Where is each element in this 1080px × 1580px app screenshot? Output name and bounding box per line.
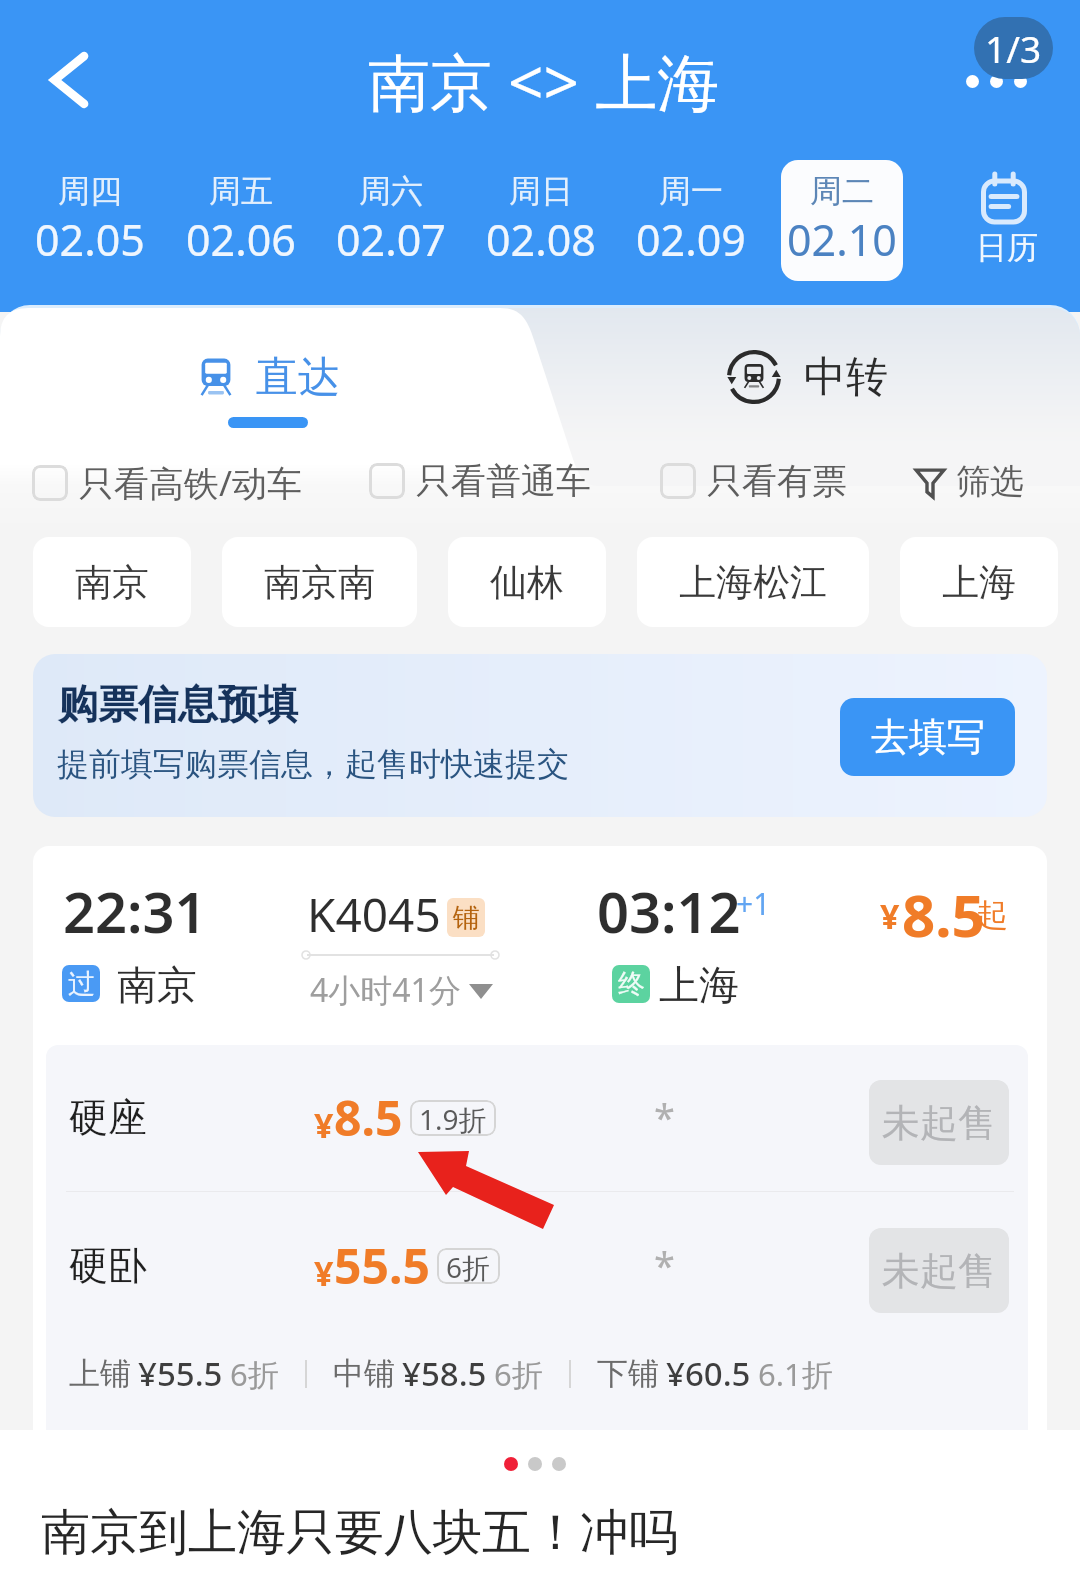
staticText: 02.06 (186, 210, 296, 269)
staticText: 上海松江 (679, 559, 827, 606)
button[interactable]: 上海 (900, 537, 1058, 627)
staticText: 购票信息预填 (58, 679, 298, 729)
button[interactable]: 只看有票 (660, 459, 847, 503)
staticText: 南京到上海只要八块五！冲吗 (41, 1502, 678, 1564)
staticText: 1/3 (985, 23, 1042, 73)
staticText: 日历 (976, 228, 1038, 267)
staticText: 南京 (75, 559, 149, 606)
staticText: ¥60.5 (666, 1351, 751, 1396)
button[interactable] (33, 846, 1047, 1042)
button[interactable]: 周六 (330, 160, 452, 281)
staticText: 只看有票 (707, 459, 847, 503)
staticText: 02.07 (336, 210, 446, 269)
button[interactable]: 周日 (480, 160, 602, 281)
button[interactable]: 周四 (29, 160, 151, 281)
button[interactable]: 南京 (33, 537, 191, 627)
button[interactable]: 周五 (180, 160, 302, 281)
staticText: 4小时41分 (310, 968, 461, 1012)
staticText: 1.9折 (419, 1100, 487, 1136)
button[interactable]: 只看高铁/动车 (32, 459, 303, 507)
staticText: 硬座 (69, 1093, 147, 1142)
button[interactable]: 南京南 (222, 537, 417, 627)
staticText: 未起售 (882, 1247, 996, 1295)
staticText: 中转 (804, 351, 888, 404)
staticText: 中铺 (333, 1354, 395, 1393)
staticText: 南京 <> 上海 (368, 39, 720, 124)
staticText: 上海 (659, 960, 739, 1010)
staticText: 02.08 (486, 210, 596, 269)
button[interactable]: 未起售 (869, 1228, 1009, 1313)
staticText: ¥55.5 (138, 1351, 223, 1396)
button[interactable]: 只看普通车 (369, 459, 591, 503)
staticText: ¥58.5 (402, 1351, 487, 1396)
button[interactable]: 去填写 (840, 698, 1015, 776)
staticText: 55.5 (334, 1233, 430, 1298)
staticText: 筛选 (956, 460, 1024, 503)
staticText: 铺 (453, 901, 480, 935)
staticText: 6折 (446, 1248, 491, 1284)
staticText: 6.1折 (758, 1353, 833, 1395)
button[interactable]: 上海松江 (637, 537, 869, 627)
button[interactable]: Calendar (955, 162, 1055, 274)
button[interactable]: 直达 (196, 344, 340, 410)
staticText: ¥ (314, 1102, 334, 1148)
staticText: 8.5 (902, 875, 985, 954)
staticText: 过 (68, 967, 95, 1001)
staticText: 直达 (256, 351, 340, 404)
button[interactable]: 未起售 (869, 1080, 1009, 1165)
staticText: 8.5 (334, 1085, 403, 1150)
staticText: 周一 (659, 171, 723, 211)
staticText: 只看普通车 (416, 459, 591, 503)
staticText: 南京 (117, 960, 197, 1010)
staticText: 南京南 (264, 559, 375, 606)
staticText: 02.05 (35, 210, 145, 269)
staticText: 周五 (209, 171, 273, 211)
button[interactable]: 周一 (630, 160, 752, 281)
staticText: 02.09 (636, 210, 746, 269)
staticText: 下铺 (597, 1354, 659, 1393)
staticText: 周六 (359, 171, 423, 211)
button[interactable]: 购票信息预填 (33, 654, 1047, 817)
staticText: * (654, 1239, 675, 1291)
button[interactable]: 仙林 (448, 537, 606, 627)
staticText: ¥ (880, 893, 900, 939)
staticText: 6折 (230, 1353, 279, 1395)
staticText: 起 (976, 895, 1008, 935)
staticText: 周四 (58, 171, 122, 211)
staticText: 仙林 (490, 559, 564, 606)
staticText: K4045 (307, 883, 441, 946)
staticText: 6折 (494, 1353, 543, 1395)
staticText: 03:12 (597, 873, 741, 949)
staticText: * (654, 1091, 675, 1143)
staticText: +1 (736, 883, 771, 924)
staticText: 只看高铁/动车 (79, 459, 303, 507)
staticText: ¥ (314, 1250, 334, 1296)
staticText: 上铺 (69, 1354, 131, 1393)
staticText: 提前填写购票信息，起售时快速提交 (57, 744, 569, 784)
button[interactable]: 筛选 (915, 458, 1024, 504)
staticText: 周二 (810, 171, 874, 211)
staticText: 22:31 (63, 873, 207, 949)
staticText: 上海 (942, 559, 1016, 606)
staticText: 02.10 (787, 210, 897, 269)
button[interactable]: 周二 (781, 160, 903, 281)
staticText: 硬卧 (69, 1241, 147, 1290)
staticText: 终 (618, 967, 645, 1001)
button[interactable]: 中转 (726, 344, 888, 410)
staticText: 未起售 (882, 1099, 996, 1147)
button[interactable]: Back (21, 32, 117, 128)
staticText: 周日 (509, 171, 573, 211)
staticText: 去填写 (871, 713, 985, 761)
